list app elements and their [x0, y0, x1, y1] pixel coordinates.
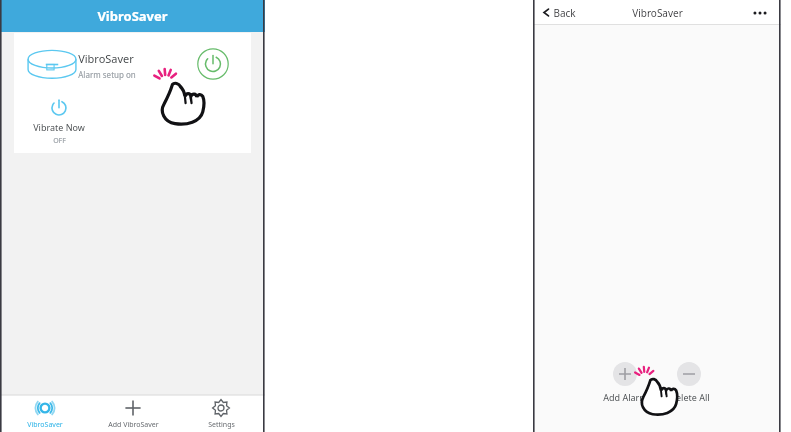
button[interactable]: Settings — [177, 395, 265, 432]
staticText: Add Alarm — [603, 391, 648, 403]
button[interactable]: Back — [539, 0, 579, 25]
button[interactable]: Add VibroSaver — [89, 395, 177, 432]
staticText: Delete All — [669, 391, 710, 403]
staticText: OFF — [53, 136, 66, 146]
button[interactable]: Power — [197, 48, 229, 80]
staticText: Settings — [208, 420, 235, 430]
staticText: Back — [553, 6, 576, 20]
button[interactable]: VibroSaver — [14, 33, 251, 95]
button[interactable]: More options — [749, 2, 771, 24]
staticText: VibroSaver — [97, 7, 168, 25]
staticText: VibroSaver — [27, 420, 63, 430]
staticText: VibroSaver — [78, 51, 134, 66]
staticText: Add VibroSaver — [108, 420, 159, 430]
staticText: Alarm setup on — [78, 69, 136, 80]
button[interactable]: Add Alarm — [597, 362, 653, 403]
button[interactable]: Vibrate Now — [22, 99, 96, 146]
button[interactable]: VibroSaver — [0, 395, 89, 432]
button[interactable]: Delete All — [661, 362, 717, 403]
staticText: Vibrate Now — [33, 121, 85, 133]
staticText: VibroSaver — [632, 6, 683, 20]
